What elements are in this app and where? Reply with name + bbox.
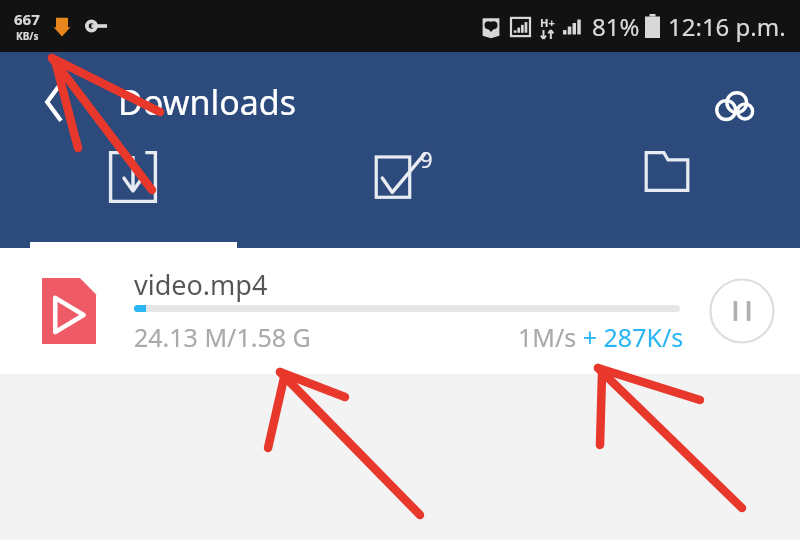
button[interactable]: Pause <box>704 273 780 349</box>
staticText: 81% <box>592 10 640 43</box>
button[interactable]: Completed tab, 9 items <box>266 148 533 204</box>
staticText: 12:16 p.m. <box>668 10 786 43</box>
staticText: 24.13 M/1.58 G <box>134 320 311 354</box>
staticText: Downloads <box>118 79 297 125</box>
button[interactable]: video.mp4 <box>0 248 800 374</box>
button[interactable]: Downloads tab <box>0 148 266 206</box>
button[interactable]: Cloud <box>708 80 760 132</box>
button[interactable]: Files tab <box>533 148 800 194</box>
staticText: KB/s <box>16 29 39 43</box>
button[interactable]: Back <box>30 78 78 126</box>
staticText: 1M/s + 287K/s <box>518 320 684 354</box>
staticText: video.mp4 <box>134 266 268 303</box>
staticText: 667 <box>14 9 40 29</box>
staticText: H+ <box>540 15 555 30</box>
staticText: 9 <box>420 144 433 174</box>
